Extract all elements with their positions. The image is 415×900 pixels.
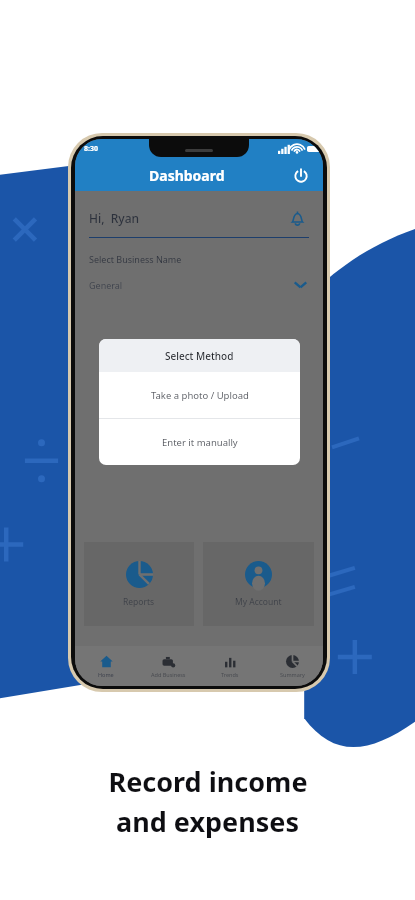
staticText: and expenses: [116, 803, 299, 840]
button[interactable]: My Account: [203, 542, 314, 626]
staticText: Hi, Ryan: [89, 210, 140, 226]
staticText: Add Business: [151, 671, 186, 678]
button[interactable]: Enter it manually: [99, 419, 300, 465]
staticText: 8:30: [84, 144, 98, 154]
button[interactable]: Trends: [199, 646, 261, 686]
staticText: Record income: [108, 763, 308, 800]
staticText: Summary: [280, 671, 305, 678]
button[interactable]: Notifications: [285, 206, 309, 230]
staticText: Select Business Name: [89, 253, 182, 265]
button[interactable]: Add Business: [137, 646, 199, 686]
button[interactable]: Take a photo / Upload: [99, 372, 300, 418]
staticText: Dashboard: [149, 166, 225, 185]
staticText: Enter it manually: [162, 436, 238, 449]
button[interactable]: General: [89, 276, 309, 293]
staticText: Trends: [221, 671, 239, 678]
staticText: Home: [98, 671, 114, 678]
button[interactable]: Summary: [261, 646, 323, 686]
staticText: Take a photo / Upload: [151, 389, 249, 402]
staticText: Select Method: [165, 349, 234, 363]
staticText: General: [89, 279, 123, 291]
button[interactable]: Log out: [289, 164, 313, 188]
staticText: Reports: [123, 596, 155, 608]
staticText: My Account: [235, 596, 282, 608]
button[interactable]: Reports: [84, 542, 194, 626]
button[interactable]: Home: [75, 646, 137, 686]
